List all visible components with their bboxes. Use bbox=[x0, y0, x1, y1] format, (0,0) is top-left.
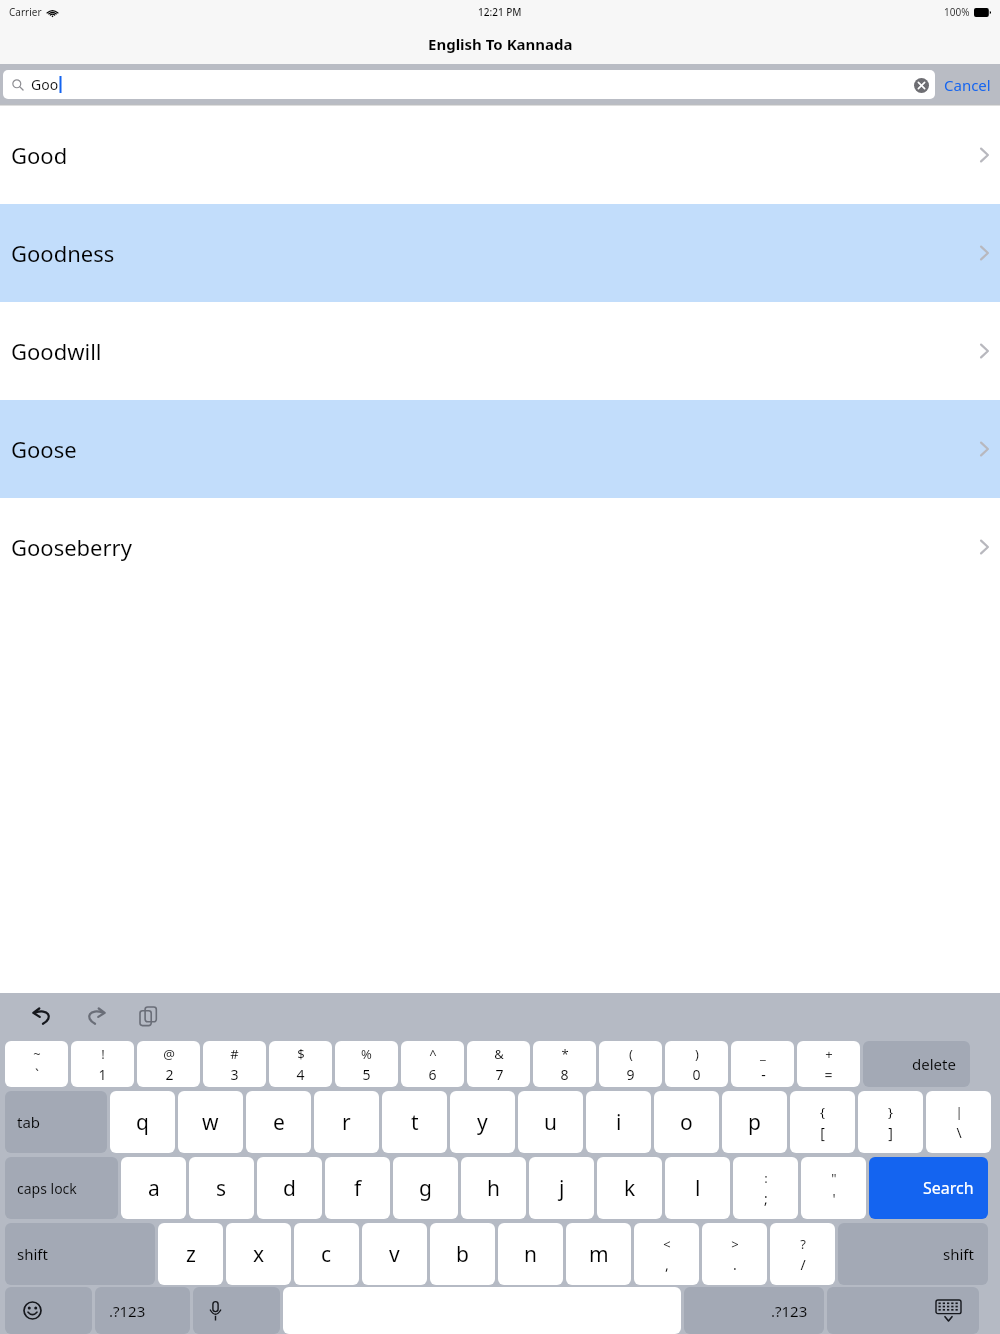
button[interactable]: k bbox=[597, 1157, 662, 1219]
button[interactable]: Search bbox=[869, 1157, 988, 1219]
button[interactable]: Cancel bbox=[935, 64, 1000, 105]
button[interactable]: shift bbox=[838, 1223, 988, 1285]
button[interactable]: Gooseberry bbox=[0, 498, 1000, 596]
button[interactable]: Undo bbox=[22, 996, 62, 1036]
staticText: _ bbox=[760, 1045, 766, 1063]
button[interactable]: $ bbox=[269, 1041, 332, 1087]
staticText: Goose bbox=[11, 434, 77, 464]
button[interactable]: @ bbox=[137, 1041, 200, 1087]
button[interactable]: Clear text bbox=[907, 71, 935, 99]
staticText: Carrier bbox=[9, 5, 42, 19]
button[interactable]: Hide keyboard bbox=[827, 1287, 979, 1334]
button[interactable]: Paste bbox=[128, 996, 168, 1036]
button[interactable]: % bbox=[335, 1041, 398, 1087]
button[interactable]: s bbox=[189, 1157, 254, 1219]
button[interactable]: * bbox=[533, 1041, 596, 1087]
button[interactable]: m bbox=[566, 1223, 631, 1285]
button[interactable]: a bbox=[121, 1157, 186, 1219]
button[interactable]: n bbox=[498, 1223, 563, 1285]
button[interactable]: d bbox=[257, 1157, 322, 1219]
staticText: ' bbox=[832, 1189, 836, 1208]
button[interactable]: Goodness bbox=[0, 204, 1000, 302]
button[interactable]: ? bbox=[770, 1223, 835, 1285]
button[interactable]: f bbox=[325, 1157, 390, 1219]
button[interactable]: z bbox=[158, 1223, 223, 1285]
button[interactable]: .?123 bbox=[95, 1287, 190, 1334]
button[interactable]: r bbox=[314, 1091, 379, 1153]
staticText: = bbox=[824, 1065, 833, 1084]
button[interactable]: .?123 bbox=[684, 1287, 824, 1334]
staticText: 9 bbox=[626, 1065, 635, 1084]
button[interactable]: & bbox=[467, 1041, 530, 1087]
button[interactable]: ~ bbox=[5, 1041, 68, 1087]
button[interactable]: p bbox=[722, 1091, 787, 1153]
staticText: Search bbox=[923, 1177, 974, 1199]
staticText: f bbox=[354, 1174, 362, 1203]
button[interactable]: Goo bbox=[3, 70, 935, 99]
button[interactable]: b bbox=[430, 1223, 495, 1285]
staticText: ` bbox=[35, 1065, 39, 1084]
button[interactable]: w bbox=[178, 1091, 243, 1153]
button[interactable]: e bbox=[246, 1091, 311, 1153]
button[interactable]: delete bbox=[863, 1041, 970, 1087]
button[interactable]: g bbox=[393, 1157, 458, 1219]
button[interactable]: Goodwill bbox=[0, 302, 1000, 400]
button[interactable]: } bbox=[858, 1091, 923, 1153]
staticText: shift bbox=[17, 1244, 48, 1264]
button[interactable]: caps lock bbox=[5, 1157, 118, 1219]
staticText: & bbox=[494, 1045, 504, 1063]
staticText: ; bbox=[764, 1189, 768, 1208]
button[interactable]: ^ bbox=[401, 1041, 464, 1087]
staticText: .?123 bbox=[109, 1301, 146, 1321]
staticText: Goodwill bbox=[11, 336, 102, 366]
button[interactable]: c bbox=[294, 1223, 359, 1285]
staticText: n bbox=[524, 1240, 537, 1269]
staticText: Cancel bbox=[944, 75, 991, 95]
button[interactable]: i bbox=[586, 1091, 651, 1153]
button[interactable]: Good bbox=[0, 106, 1000, 204]
button[interactable]: q bbox=[110, 1091, 175, 1153]
button[interactable]: y bbox=[450, 1091, 515, 1153]
button[interactable]: v bbox=[362, 1223, 427, 1285]
button[interactable]: o bbox=[654, 1091, 719, 1153]
button[interactable]: > bbox=[702, 1223, 767, 1285]
button[interactable]: { bbox=[790, 1091, 855, 1153]
button[interactable]: Goose bbox=[0, 400, 1000, 498]
button[interactable]: ) bbox=[665, 1041, 728, 1087]
staticText: p bbox=[748, 1108, 761, 1137]
button[interactable]: t bbox=[382, 1091, 447, 1153]
staticText: r bbox=[342, 1108, 351, 1137]
button[interactable]: u bbox=[518, 1091, 583, 1153]
button[interactable]: shift bbox=[5, 1223, 155, 1285]
staticText: : bbox=[764, 1169, 768, 1187]
button[interactable]: : bbox=[733, 1157, 798, 1219]
button[interactable]: < bbox=[634, 1223, 699, 1285]
staticText: delete bbox=[912, 1054, 956, 1074]
button[interactable]: Dictation bbox=[193, 1287, 280, 1334]
button[interactable]: x bbox=[226, 1223, 291, 1285]
staticText: z bbox=[186, 1240, 196, 1269]
staticText: $ bbox=[297, 1045, 305, 1063]
button[interactable]: j bbox=[529, 1157, 594, 1219]
button[interactable]: + bbox=[797, 1041, 860, 1087]
button[interactable]: Emoji bbox=[5, 1287, 92, 1334]
button[interactable]: l bbox=[665, 1157, 730, 1219]
button[interactable]: ! bbox=[71, 1041, 134, 1087]
staticText: c bbox=[321, 1240, 332, 1269]
button[interactable]: " bbox=[801, 1157, 866, 1219]
staticText: 3 bbox=[230, 1065, 239, 1084]
staticText: w bbox=[202, 1108, 219, 1137]
button[interactable]: # bbox=[203, 1041, 266, 1087]
staticText: s bbox=[216, 1174, 227, 1203]
staticText: \ bbox=[956, 1123, 962, 1142]
button[interactable]: _ bbox=[731, 1041, 794, 1087]
button[interactable]: ( bbox=[599, 1041, 662, 1087]
staticText: ? bbox=[800, 1235, 806, 1253]
button[interactable]: h bbox=[461, 1157, 526, 1219]
staticText: y bbox=[477, 1108, 488, 1137]
button[interactable]: | bbox=[926, 1091, 991, 1153]
button[interactable]: Redo bbox=[75, 996, 115, 1036]
button[interactable]: tab bbox=[5, 1091, 107, 1153]
staticText: Gooseberry bbox=[11, 532, 132, 562]
